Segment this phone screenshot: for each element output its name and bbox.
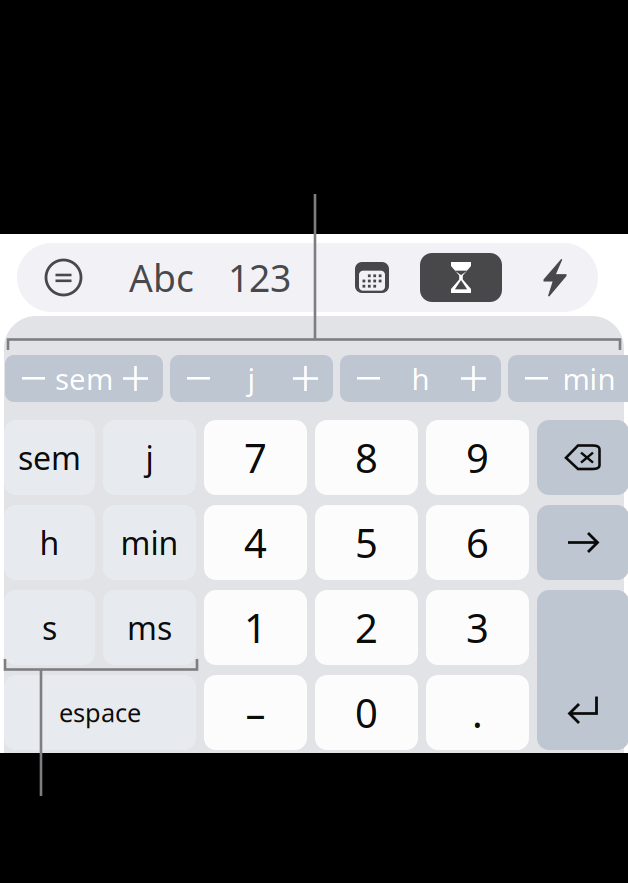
button[interactable]: – xyxy=(204,675,307,750)
button[interactable]: Duration xyxy=(410,243,512,312)
button[interactable]: 4 xyxy=(204,505,307,580)
button[interactable]: j xyxy=(170,355,333,402)
staticText: 7 xyxy=(244,431,267,484)
staticText: 6 xyxy=(466,516,489,569)
button[interactable]: Delete xyxy=(537,420,628,495)
button[interactable]: sem xyxy=(5,355,163,402)
staticText: 123 xyxy=(228,253,291,302)
staticText: h xyxy=(39,521,59,564)
button[interactable]: sem xyxy=(4,420,95,495)
button[interactable]: Numeric keypad xyxy=(334,243,410,312)
button[interactable]: Shortcuts xyxy=(512,243,598,312)
button[interactable]: . xyxy=(426,675,529,750)
staticText: ms xyxy=(127,606,172,649)
button[interactable]: ms xyxy=(103,590,196,665)
staticText: 2 xyxy=(355,601,378,654)
staticText: 9 xyxy=(466,431,489,484)
staticText: j xyxy=(247,359,255,398)
button[interactable]: 8 xyxy=(315,420,418,495)
button[interactable]: 7 xyxy=(204,420,307,495)
button[interactable]: 1 xyxy=(204,590,307,665)
staticText: h xyxy=(411,359,429,398)
button[interactable]: 3 xyxy=(426,590,529,665)
button[interactable]: s xyxy=(4,590,95,665)
staticText: min xyxy=(562,359,615,398)
staticText: – xyxy=(245,686,265,739)
button[interactable]: 123 xyxy=(213,243,306,312)
button[interactable]: Next field xyxy=(537,505,628,580)
button[interactable]: h xyxy=(4,505,95,580)
staticText: 8 xyxy=(355,431,378,484)
staticText: Abc xyxy=(129,253,194,302)
button[interactable]: min xyxy=(103,505,196,580)
button[interactable]: Abc xyxy=(110,243,213,312)
staticText: 0 xyxy=(355,686,378,739)
staticText: min xyxy=(120,521,178,564)
staticText: j xyxy=(145,436,153,479)
staticText: . xyxy=(472,686,483,739)
button[interactable]: 9 xyxy=(426,420,529,495)
staticText: 3 xyxy=(466,601,489,654)
staticText: 1 xyxy=(244,601,267,654)
button[interactable]: 6 xyxy=(426,505,529,580)
button[interactable]: Return xyxy=(537,590,628,750)
button[interactable]: 5 xyxy=(315,505,418,580)
button[interactable]: 2 xyxy=(315,590,418,665)
button[interactable]: espace xyxy=(4,675,196,750)
staticText: 5 xyxy=(355,516,378,569)
button[interactable]: min xyxy=(508,355,628,402)
button[interactable]: 0 xyxy=(315,675,418,750)
button[interactable]: Input mode xyxy=(17,243,110,312)
staticText: sem xyxy=(18,436,81,479)
staticText: 4 xyxy=(244,516,267,569)
staticText: espace xyxy=(59,696,141,729)
staticText: s xyxy=(42,606,57,649)
staticText: sem xyxy=(55,359,113,398)
button[interactable]: h xyxy=(340,355,501,402)
button[interactable]: j xyxy=(103,420,196,495)
